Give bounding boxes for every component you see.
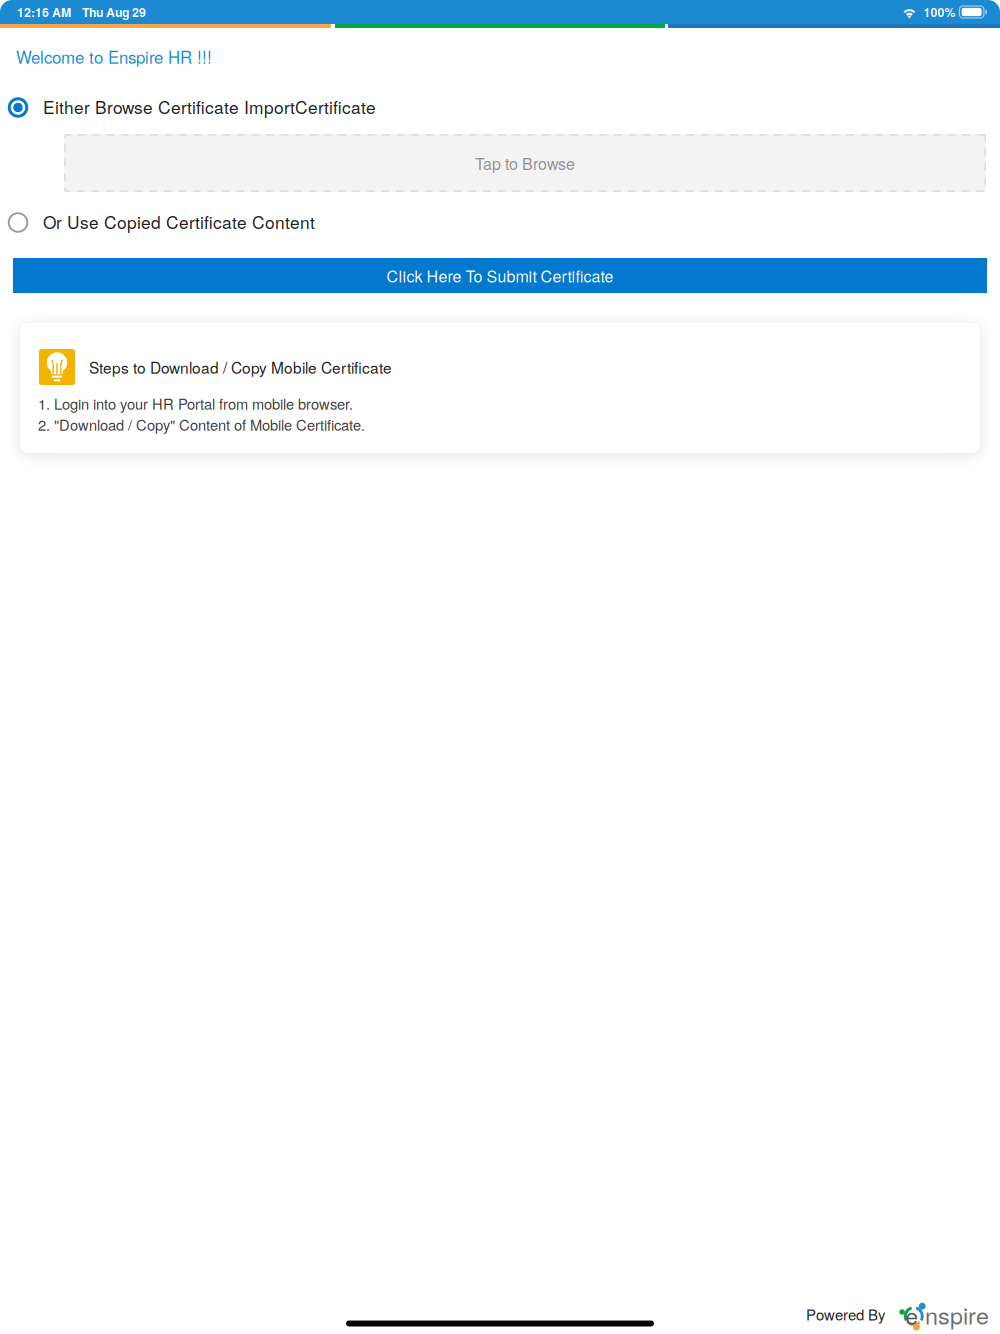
staticText: Steps to Download / Copy Mobile Certific… [89,356,392,378]
staticText: Click Here To Submit Certificate [386,264,613,287]
staticText: Powered By [806,1303,885,1325]
staticText: Thu Aug 29 [82,3,146,21]
button[interactable]: Click Here To Submit Certificate [13,258,987,293]
staticText: 12:16 AM [17,3,71,21]
staticText: Welcome to Enspire HR !!! [16,44,212,69]
staticText: nspire [925,1298,989,1331]
staticText: 1. Login into your HR Portal from mobile… [38,393,353,414]
staticText: e [905,1299,918,1331]
staticText: Either Browse Certificate ImportCertific… [43,94,376,119]
staticText: Or Use Copied Certificate Content [43,209,315,234]
staticText: 2. "Download / Copy" Content of Mobile C… [38,414,365,435]
button[interactable]: Either Browse Certificate ImportCertific… [0,95,1000,118]
staticText: Tap to Browse [475,151,575,174]
button[interactable]: Or Use Copied Certificate Content [0,210,1000,233]
button[interactable]: Tap to Browse [64,134,986,192]
staticText: 100% [923,3,955,21]
